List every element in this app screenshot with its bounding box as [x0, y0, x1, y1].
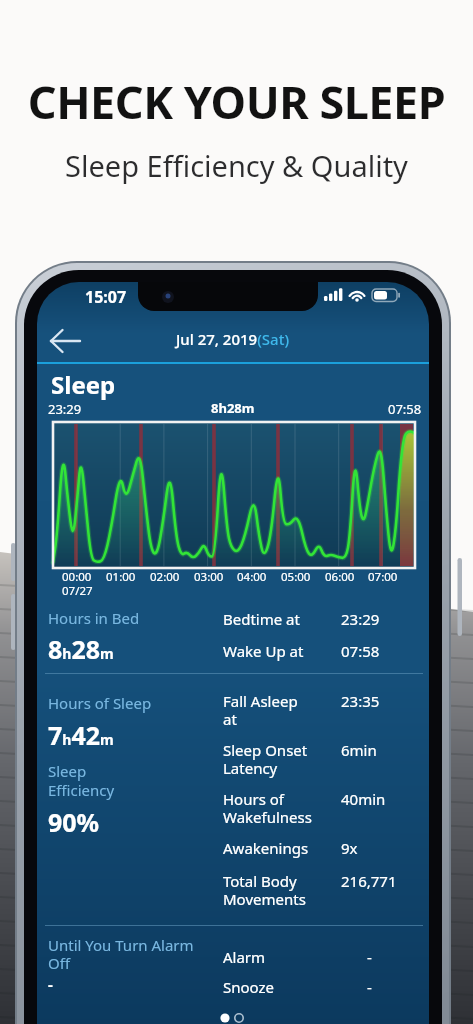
staticText: Until You Turn Alarm Off — [48, 935, 194, 974]
staticText: 02:00 — [150, 569, 180, 585]
staticText: 23:29 — [341, 609, 380, 629]
staticText: 23:35 — [341, 691, 380, 711]
staticText: Jul 27, 2019(Sat) — [176, 329, 290, 349]
button[interactable] — [37, 1012, 429, 1024]
staticText: 23:29 — [48, 400, 82, 418]
staticText: Wake Up at — [223, 641, 304, 661]
staticText: Hours of Sleep — [48, 693, 152, 713]
staticText: Sleep Efficiency — [48, 761, 115, 800]
staticText: 216,771 — [341, 871, 397, 891]
staticText: 8h28m — [48, 632, 114, 666]
staticText: Sleep Efficiency & Quality — [0, 146, 473, 185]
staticText: 9x — [341, 838, 358, 858]
staticText: Sleep — [51, 368, 116, 401]
staticText: 07/27 — [62, 583, 93, 599]
staticText: Total Body Movements — [223, 871, 306, 910]
staticText: - — [367, 947, 372, 967]
staticText: 03:00 — [194, 569, 224, 585]
staticText: Sleep Onset Latency — [223, 740, 308, 779]
staticText: Hours in Bed — [48, 608, 140, 628]
staticText: Awakenings — [223, 838, 309, 858]
staticText: Fall Asleep at — [223, 691, 298, 730]
staticText: 40min — [341, 789, 386, 809]
staticText: 8h28m — [211, 399, 255, 417]
staticText: CHECK YOUR SLEEP — [0, 71, 473, 132]
staticText: Snooze — [223, 977, 275, 997]
staticText: Alarm — [223, 947, 266, 967]
staticText: 07:00 — [368, 569, 398, 585]
staticText: 00:00 — [62, 569, 92, 585]
staticText: 90% — [48, 805, 100, 839]
staticText: 06:00 — [325, 569, 355, 585]
staticText: 07:58 — [388, 400, 422, 418]
staticText: 07:58 — [341, 641, 380, 661]
staticText: Hours of Wakefulness — [223, 789, 312, 828]
staticText: - — [48, 974, 53, 994]
staticText: - — [367, 977, 372, 997]
staticText: 05:00 — [281, 569, 311, 585]
staticText: 01:00 — [106, 569, 136, 585]
staticText: 04:00 — [237, 569, 267, 585]
staticText: 6min — [341, 740, 377, 760]
staticText: 15:07 — [85, 286, 127, 308]
button[interactable] — [47, 324, 91, 358]
staticText: 7h42m — [48, 718, 114, 752]
staticText: Bedtime at — [223, 609, 300, 629]
